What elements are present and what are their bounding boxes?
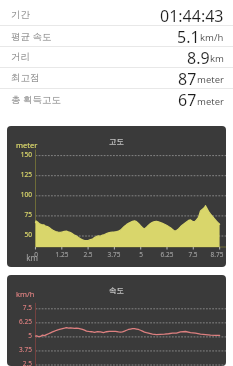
staticText: 5.1	[177, 26, 200, 46]
button[interactable]: 거리	[0, 47, 233, 68]
staticText: 3.75	[102, 250, 126, 259]
staticText: 고도	[109, 137, 124, 146]
staticText: 5	[129, 250, 153, 259]
staticText: 150	[7, 150, 32, 159]
button[interactable]: 평균 속도	[0, 26, 233, 47]
staticText: km/h	[16, 289, 35, 299]
staticText: 6.25	[7, 317, 32, 326]
staticText: 속도	[109, 286, 124, 295]
staticText: 125	[7, 170, 32, 179]
staticText: 거리	[11, 51, 30, 63]
staticText: 75	[7, 210, 32, 219]
button[interactable]: 고도	[7, 126, 226, 267]
staticText: meter	[197, 95, 224, 108]
staticText: 2.5	[7, 359, 32, 366]
staticText: km	[11, 252, 38, 263]
staticText: 1.25	[50, 250, 74, 259]
staticText: 최고점	[11, 72, 40, 84]
staticText: 87	[178, 68, 197, 88]
staticText: 100	[7, 190, 32, 199]
button[interactable]: 기간	[0, 5, 233, 26]
button[interactable]: 최고점	[0, 68, 233, 89]
staticText: km	[210, 52, 224, 65]
staticText: 평균 속도	[11, 30, 52, 43]
staticText: 01:44:43	[160, 5, 224, 25]
staticText: 0	[24, 250, 48, 259]
staticText: 기간	[11, 9, 30, 21]
staticText: 8.75	[208, 250, 226, 259]
staticText: 5	[7, 331, 32, 340]
staticText: 7.5	[7, 303, 32, 312]
staticText: 50	[7, 230, 32, 239]
staticText: meter	[16, 140, 38, 150]
staticText: 67	[178, 89, 197, 110]
staticText: meter	[197, 73, 224, 86]
button[interactable]: 속도	[7, 275, 226, 366]
button[interactable]: 총 획득고도	[0, 89, 233, 110]
staticText: 3.75	[7, 345, 32, 354]
staticText: 총 획득고도	[11, 93, 61, 106]
staticText: km/h	[200, 31, 224, 44]
staticText: 8.9	[187, 47, 210, 67]
staticText: 6.25	[155, 250, 179, 259]
staticText: 7.5	[181, 250, 205, 259]
staticText: 2.5	[76, 250, 100, 259]
